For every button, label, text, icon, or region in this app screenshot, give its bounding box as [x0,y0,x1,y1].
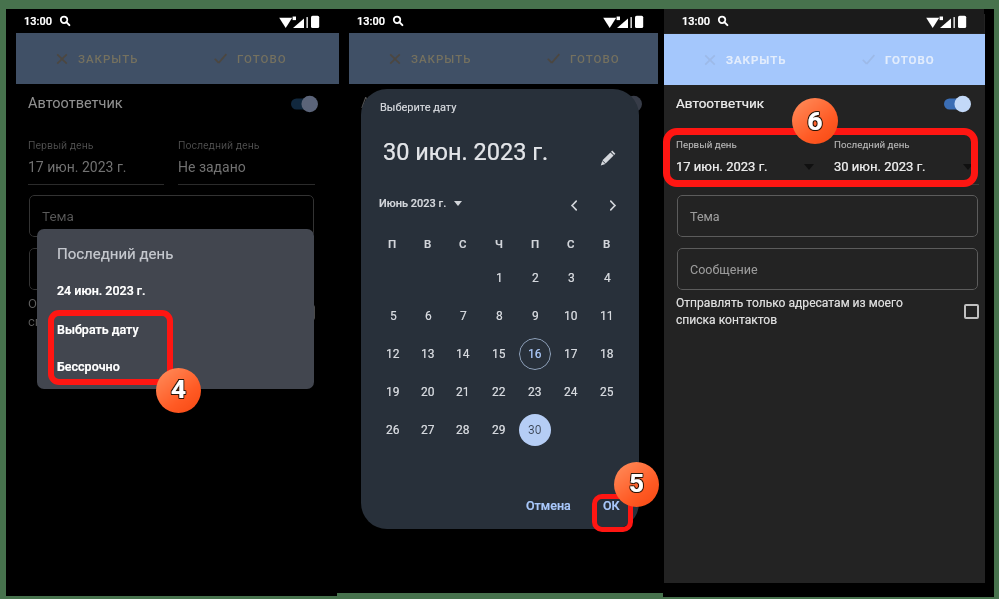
button[interactable]: 25 [591,376,623,408]
button[interactable]: 1 [483,262,515,294]
button[interactable]: Автоответчик [664,84,991,124]
button[interactable]: 2 [519,262,551,294]
button[interactable]: ЗАКРЫТЬ [383,44,478,73]
staticText: 13:00 [24,15,52,28]
staticText: 4 [171,374,186,405]
staticText: Первый день [28,139,94,151]
button[interactable]: ГОТОВО [856,45,941,74]
button[interactable]: Выбрать дату [49,311,194,347]
staticText: Бессрочно [57,359,120,374]
button[interactable]: 10 [555,300,587,332]
staticText: 17 июн. 2023 г. [28,159,127,175]
button[interactable]: ОК [592,490,631,520]
staticText: 25 [600,385,614,399]
staticText: 19 [386,385,400,399]
button[interactable]: 27 [412,414,444,446]
staticText: Последний день [57,245,174,263]
button[interactable]: Изменить дату [594,145,620,171]
button[interactable]: 8 [483,300,515,332]
staticText: 20 [421,385,435,399]
staticText: 8 [496,309,503,323]
button[interactable]: Автоответчик [339,84,661,124]
button[interactable]: Сообщение [677,248,978,290]
staticText: 30 июн. 2023 г. [383,138,549,166]
button[interactable]: Предыдущий месяц [561,192,587,218]
staticText: 13:00 [682,15,710,28]
button[interactable]: 26 [377,414,409,446]
staticText: Отправлять только адресатам из моего спи… [28,296,273,329]
button[interactable]: Первый день [676,130,820,185]
button[interactable]: 28 [447,414,479,446]
button[interactable]: 17 [555,338,587,370]
staticText: В [424,237,432,250]
staticText: 6 [807,106,823,137]
button[interactable]: Тема [29,195,314,237]
staticText: ГОТОВО [570,52,620,65]
button[interactable]: ЗАКРЫТЬ [50,44,145,73]
button[interactable]: 6 [412,300,444,332]
staticText: 5 [628,469,643,500]
staticText: Не задано [178,159,246,175]
button[interactable]: 20 [412,376,444,408]
button[interactable]: Первый день [28,130,164,185]
staticText: 16 [528,347,542,361]
button[interactable]: Отправлять только адресатам из моего спи… [361,296,639,329]
button[interactable]: 15 [483,338,515,370]
staticText: 6 [808,105,824,136]
staticText: 5 [628,467,643,498]
button[interactable]: 29 [483,414,515,446]
button[interactable]: Последний день [178,130,315,185]
button[interactable]: Первый день [361,130,493,185]
staticText: 29 [492,423,506,437]
staticText: Выберите дату [380,101,457,114]
button[interactable]: Автоответчик [6,84,337,124]
staticText: 6 [808,104,824,135]
button[interactable]: Бессрочно [49,348,194,384]
staticText: 5 [629,468,644,499]
button[interactable]: 16 [519,338,551,370]
staticText: 4 [171,373,186,404]
staticText: Отправлять только адресатам из моего спи… [361,296,606,329]
button[interactable]: 30 [519,414,551,446]
button[interactable]: Тема [362,195,638,237]
button[interactable]: 24 [555,376,587,408]
button[interactable]: 11 [591,300,623,332]
button[interactable]: 13 [412,338,444,370]
staticText: Автоответчик [676,95,765,111]
button[interactable]: Июнь 2023 г. [379,191,462,215]
button[interactable]: 18 [591,338,623,370]
staticText: ОК [603,498,620,513]
button[interactable]: ЗАКРЫТЬ [698,45,793,74]
button[interactable]: 5 [377,300,409,332]
button[interactable]: ГОТОВО [541,44,626,73]
staticText: 6 [425,309,432,323]
button[interactable]: 7 [447,300,479,332]
button[interactable]: 3 [555,262,587,294]
button[interactable]: 23 [519,376,551,408]
button[interactable]: 19 [377,376,409,408]
staticText: 6 [806,105,822,136]
button[interactable]: 12 [377,338,409,370]
staticText: 9 [532,309,539,323]
staticText: Последний день [178,139,260,151]
button[interactable]: ГОТОВО [208,44,293,73]
button[interactable]: Сообщение [362,248,638,290]
button[interactable]: 22 [483,376,515,408]
button[interactable]: Отправлять только адресатам из моего спи… [676,296,979,327]
button[interactable]: 4 [591,262,623,294]
button[interactable]: Отправлять только адресатам из моего спи… [28,296,315,329]
staticText: 5 [629,469,644,500]
staticText: 24 [564,385,578,399]
staticText: 6 [807,104,823,135]
button[interactable]: Последний день [507,130,639,185]
staticText: 15 [492,347,506,361]
button[interactable]: Последний день [834,130,979,185]
button[interactable]: 14 [447,338,479,370]
button[interactable]: 9 [519,300,551,332]
button[interactable]: Отмена [518,490,578,520]
button[interactable]: Тема [677,195,978,237]
button[interactable]: Следующий месяц [599,192,625,218]
button[interactable]: 21 [447,376,479,408]
button[interactable]: Сообщение [29,248,314,290]
staticText: 4 [172,375,187,406]
